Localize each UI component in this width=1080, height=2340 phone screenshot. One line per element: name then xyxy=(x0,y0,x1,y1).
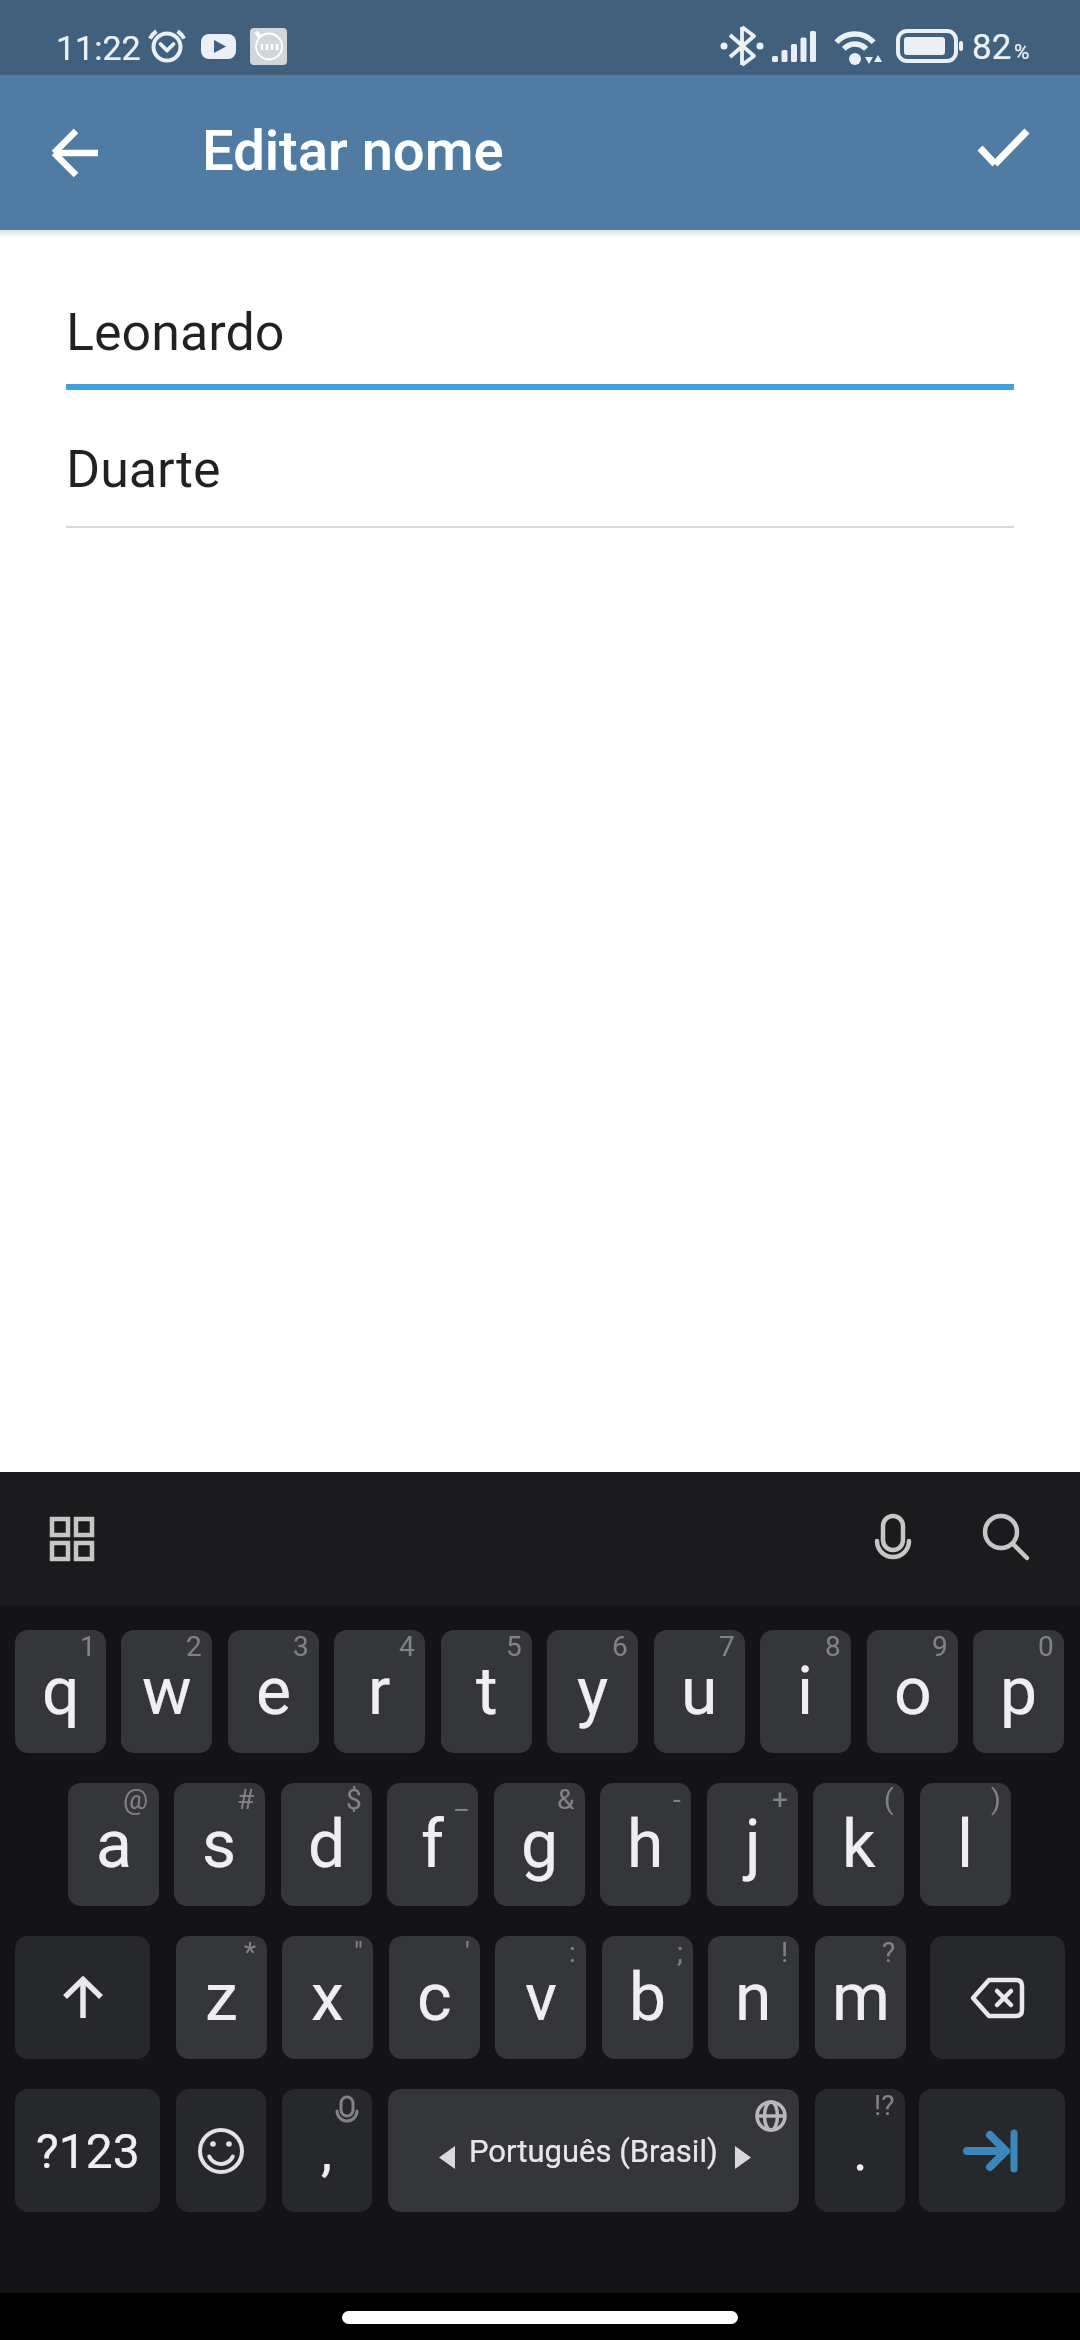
staticText: v xyxy=(525,1959,557,2036)
button[interactable]: h xyxy=(600,1783,691,1906)
button[interactable]: z xyxy=(176,1936,267,2059)
staticText: Duarte xyxy=(66,439,221,500)
staticText: Leonardo xyxy=(66,302,285,363)
staticText: ) xyxy=(991,1783,1001,1816)
staticText: ; xyxy=(677,1936,683,1969)
staticText: 1 xyxy=(80,1630,96,1663)
staticText: % xyxy=(1014,40,1030,65)
button[interactable]: t xyxy=(441,1630,532,1753)
button[interactable] xyxy=(40,117,112,189)
staticText: 7 xyxy=(719,1630,735,1663)
button[interactable] xyxy=(176,2089,266,2212)
staticText: c xyxy=(417,1959,452,2036)
staticText: l xyxy=(957,1806,974,1883)
staticText: 4 xyxy=(399,1630,415,1663)
staticText: z xyxy=(205,1959,238,2036)
staticText: q xyxy=(42,1653,80,1730)
button[interactable]: o xyxy=(867,1630,958,1753)
staticText: r xyxy=(368,1653,391,1730)
staticText: : xyxy=(569,1936,576,1969)
button[interactable]: p xyxy=(973,1630,1064,1753)
button[interactable]: x xyxy=(282,1936,373,2059)
staticText: w xyxy=(142,1653,192,1730)
staticText: b xyxy=(629,1959,667,2036)
staticText: - xyxy=(673,1783,681,1816)
button[interactable]: c xyxy=(389,1936,480,2059)
staticText: $ xyxy=(346,1783,362,1816)
staticText: x xyxy=(311,1959,344,2036)
button[interactable]: g xyxy=(494,1783,585,1906)
button[interactable]: v xyxy=(495,1936,586,2059)
staticText: m xyxy=(832,1959,890,2036)
staticText: & xyxy=(557,1783,575,1816)
staticText: Editar nome xyxy=(202,118,504,184)
button[interactable] xyxy=(919,2089,1065,2212)
button[interactable]: k xyxy=(813,1783,904,1906)
staticText: 11:22 xyxy=(56,28,141,68)
staticText: !? xyxy=(874,2089,895,2122)
button[interactable]: u xyxy=(654,1630,745,1753)
staticText: _ xyxy=(455,1783,468,1816)
staticText: p xyxy=(1000,1653,1038,1730)
button[interactable] xyxy=(15,1936,150,2059)
staticText: ! xyxy=(781,1936,789,1969)
staticText: i xyxy=(797,1653,814,1730)
button[interactable]: l xyxy=(920,1783,1011,1906)
staticText: k xyxy=(842,1806,876,1883)
staticText: d xyxy=(308,1806,346,1883)
staticText: 2 xyxy=(186,1630,202,1663)
button[interactable]: f xyxy=(387,1783,478,1906)
button[interactable]: s xyxy=(174,1783,265,1906)
staticText: g xyxy=(521,1806,559,1883)
staticText: j xyxy=(745,1806,761,1883)
staticText: e xyxy=(256,1653,291,1730)
staticText: h xyxy=(627,1806,664,1883)
staticText: a xyxy=(96,1806,132,1883)
button[interactable] xyxy=(968,118,1040,190)
staticText: * xyxy=(244,1936,257,1969)
button[interactable]: w xyxy=(121,1630,212,1753)
button[interactable]: a xyxy=(68,1783,159,1906)
button[interactable]: n xyxy=(708,1936,799,2059)
button[interactable]: Leonardo xyxy=(66,270,1014,394)
button[interactable]: ?123 xyxy=(15,2089,160,2212)
staticText: # xyxy=(237,1783,255,1816)
staticText: u xyxy=(681,1653,718,1730)
button[interactable]: q xyxy=(15,1630,106,1753)
button[interactable]: . xyxy=(815,2089,905,2212)
staticText: 9 xyxy=(932,1630,948,1663)
staticText: ?123 xyxy=(36,2123,140,2179)
staticText: t xyxy=(476,1653,498,1730)
staticText: 0 xyxy=(1038,1630,1054,1663)
staticText: ( xyxy=(884,1783,894,1816)
button[interactable]: Duarte xyxy=(66,420,1014,528)
staticText: 5 xyxy=(506,1630,522,1663)
staticText: f xyxy=(421,1806,444,1883)
staticText: 8 xyxy=(825,1630,841,1663)
button[interactable]: j xyxy=(707,1783,798,1906)
staticText: 3 xyxy=(293,1630,309,1663)
button[interactable]: m xyxy=(815,1936,906,2059)
staticText: , xyxy=(321,2118,333,2184)
button[interactable]: b xyxy=(602,1936,693,2059)
button[interactable] xyxy=(971,1502,1043,1574)
button[interactable]: e xyxy=(228,1630,319,1753)
staticText: @ xyxy=(123,1783,149,1816)
button[interactable] xyxy=(857,1502,929,1574)
staticText: 82 xyxy=(972,27,1012,68)
staticText: y xyxy=(577,1653,609,1730)
staticText: ' xyxy=(465,1936,470,1969)
button[interactable]: , xyxy=(282,2089,372,2212)
staticText: Português (Brasil) xyxy=(469,2133,718,2169)
staticText: n xyxy=(735,1959,772,2036)
button[interactable]: y xyxy=(547,1630,638,1753)
staticText: 6 xyxy=(612,1630,628,1663)
button[interactable] xyxy=(36,1503,108,1575)
staticText: + xyxy=(772,1783,788,1816)
button[interactable] xyxy=(930,1936,1065,2059)
button[interactable]: r xyxy=(334,1630,425,1753)
staticText: s xyxy=(202,1806,237,1883)
button[interactable]: Português (Brasil) xyxy=(388,2089,799,2212)
button[interactable]: i xyxy=(760,1630,851,1753)
button[interactable]: d xyxy=(281,1783,372,1906)
